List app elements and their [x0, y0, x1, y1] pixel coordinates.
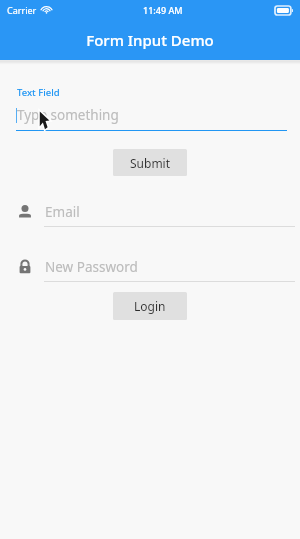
button[interactable]: Type something [16, 106, 287, 130]
staticText: Submit [130, 155, 171, 171]
staticText: Email [45, 203, 80, 221]
button[interactable]: Login [113, 292, 187, 320]
staticText: Form Input Demo [86, 30, 214, 50]
button[interactable]: Person [0, 200, 300, 227]
button[interactable]: Lock [0, 255, 300, 282]
other: Person [16, 203, 34, 221]
other: Lock [16, 258, 34, 276]
staticText: New Password [45, 258, 138, 276]
staticText: Type something [17, 106, 119, 124]
button[interactable]: Submit [113, 149, 187, 176]
staticText: Login [134, 298, 166, 314]
staticText: Text Field [17, 86, 60, 99]
staticText: 11:49 AM [143, 4, 183, 16]
staticText: Carrier [7, 4, 37, 16]
